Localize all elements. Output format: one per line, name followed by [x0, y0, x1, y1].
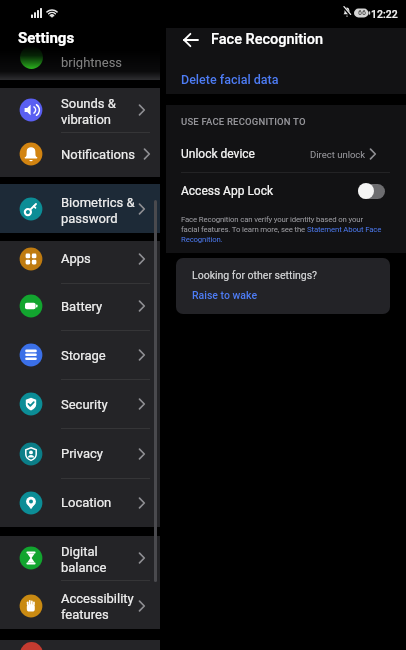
button[interactable]	[358, 184, 385, 199]
staticText: Delete facial data	[181, 72, 279, 87]
button[interactable]	[0, 536, 160, 580]
staticText: Direct unlock	[310, 149, 366, 160]
button[interactable]	[176, 28, 206, 52]
button[interactable]	[0, 132, 160, 177]
staticText: Battery	[61, 299, 103, 314]
staticText: Unlock device	[181, 147, 255, 161]
staticText: Face Recognition can verify your identit…	[181, 215, 363, 224]
staticText: features	[61, 607, 109, 622]
button[interactable]	[0, 284, 160, 329]
staticText: Access App Lock	[181, 184, 274, 198]
staticText: USE FACE RECOGNITION TO	[181, 116, 306, 127]
button[interactable]	[0, 237, 160, 282]
staticText: Apps	[61, 251, 91, 266]
staticText: Digital	[61, 544, 98, 559]
button[interactable]	[0, 432, 160, 477]
staticText: facial features. To learn more, see the	[181, 225, 307, 234]
button[interactable]	[0, 333, 160, 378]
staticText: Raise to wake	[192, 289, 258, 301]
staticText: Privacy	[61, 446, 103, 461]
button[interactable]	[0, 580, 160, 629]
staticText: brightness	[61, 55, 123, 69]
staticText: Face Recognition	[211, 31, 324, 48]
staticText: vibration	[61, 112, 111, 127]
staticText: 12:22	[371, 8, 398, 20]
staticText: Security	[61, 397, 108, 412]
staticText: 66	[358, 9, 366, 17]
staticText: Accessibility	[61, 591, 134, 606]
staticText: password	[61, 211, 118, 226]
button[interactable]	[0, 184, 160, 233]
button[interactable]	[166, 173, 406, 209]
button[interactable]	[166, 136, 406, 172]
button[interactable]	[176, 258, 390, 314]
button[interactable]	[0, 382, 160, 427]
staticText: Sounds &	[61, 96, 116, 111]
staticText: Location	[61, 495, 112, 510]
staticText: Recognition.	[181, 235, 223, 244]
staticText: Notifications	[61, 147, 135, 162]
staticText: Storage	[61, 348, 106, 363]
button[interactable]	[0, 481, 160, 526]
staticText: Looking for other settings?	[192, 269, 318, 281]
button[interactable]	[166, 62, 406, 94]
staticText: balance	[61, 560, 107, 575]
button[interactable]	[0, 88, 160, 132]
staticText: Statement About Face	[307, 225, 382, 234]
staticText: Biometrics &	[61, 195, 135, 210]
staticText: Settings	[18, 29, 75, 47]
